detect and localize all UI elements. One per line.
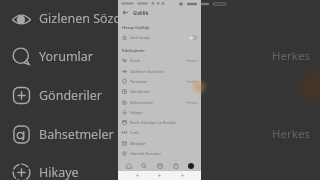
button[interactable]: Gönderiler — [0, 80, 320, 110]
button[interactable]: Yorumlar — [118, 76, 201, 86]
button[interactable]: Hareket Durumu — [118, 148, 201, 158]
button[interactable]: Sınırlı — [118, 55, 201, 65]
button[interactable]: Gizlenen Sözcükler — [0, 3, 320, 33]
button[interactable]: Shop — [170, 160, 181, 171]
staticText: Bahsetmeler — [39, 126, 114, 143]
button[interactable]: Hikaye — [0, 157, 320, 180]
staticText: Yorumlar — [39, 48, 93, 65]
staticText: Canlı — [130, 130, 140, 135]
staticText: Reels Videoları ve Remiks — [130, 120, 177, 125]
staticText: Gönderiler — [39, 87, 102, 104]
button[interactable]: Canlı — [118, 127, 201, 137]
button[interactable]: Hikaye — [118, 107, 201, 117]
button[interactable]: Home — [123, 160, 134, 171]
button[interactable]: Reels Videoları ve Remiks — [118, 117, 201, 127]
button[interactable]: System button 1 — [156, 172, 163, 179]
button[interactable]: Mesajlar — [118, 138, 201, 148]
button[interactable]: System button 0 — [134, 172, 141, 179]
staticText: Gönderiler — [130, 89, 150, 94]
button[interactable]: Search — [138, 160, 149, 171]
staticText: Bahsetmeler — [130, 100, 154, 105]
button[interactable]: Profile — [185, 160, 196, 171]
button[interactable]: Gizli hesap — [118, 32, 201, 42]
staticText: Yorumlar — [130, 79, 147, 84]
button[interactable]: Gizli hesap toggle — [189, 35, 198, 40]
staticText: Hikaye — [39, 164, 79, 180]
button[interactable]: Yorumlar — [0, 41, 320, 71]
button[interactable]: Gizlenen Sözcükler — [118, 66, 201, 76]
staticText: Herkes — [272, 126, 310, 142]
staticText: Gizlenen Sözcükler — [130, 69, 165, 74]
staticText: Sınırlı — [130, 58, 141, 63]
button[interactable]: Bahsetmeler — [118, 97, 201, 107]
staticText: Hareket Durumu — [130, 151, 161, 156]
staticText: Gizlilik — [133, 10, 149, 16]
staticText: Herkes — [272, 48, 310, 64]
button[interactable]: Bahsetmeler — [0, 119, 320, 149]
staticText: Etkileşimler — [122, 48, 146, 53]
button[interactable]: Back — [122, 9, 129, 16]
button[interactable]: Reels — [154, 160, 165, 171]
staticText: Gizli hesap — [130, 35, 150, 40]
button[interactable]: Gönderiler — [118, 86, 201, 96]
button[interactable]: System button 2 — [179, 172, 186, 179]
staticText: Mesajlar — [130, 141, 146, 146]
staticText: Herkes — [186, 100, 198, 105]
staticText: Hikaye — [130, 110, 143, 115]
staticText: Herkes — [186, 79, 198, 84]
staticText: Hesap Gizliliği — [122, 25, 150, 30]
staticText: Gizlenen Sözcükler — [39, 10, 150, 27]
staticText: Herkes — [186, 58, 198, 63]
